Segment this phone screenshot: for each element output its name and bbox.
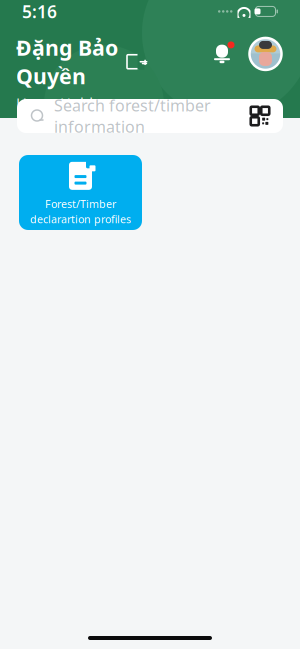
button[interactable]: Search forest or timber information bbox=[17, 99, 283, 133]
staticText: declarartion profiles bbox=[30, 212, 131, 226]
staticText: Search forest/timber information bbox=[54, 95, 211, 137]
staticText: HouseHold bbox=[16, 93, 93, 113]
button[interactable]: Profile bbox=[247, 35, 284, 72]
staticText: Đặng Bảo Quyền bbox=[16, 33, 118, 90]
button[interactable]: Forest/Timber bbox=[19, 155, 142, 230]
staticText: 5:16 bbox=[22, 0, 57, 23]
staticText: Forest/Timber bbox=[45, 197, 116, 211]
button[interactable]: Log out bbox=[127, 52, 149, 72]
button[interactable]: Notifications bbox=[211, 43, 233, 65]
